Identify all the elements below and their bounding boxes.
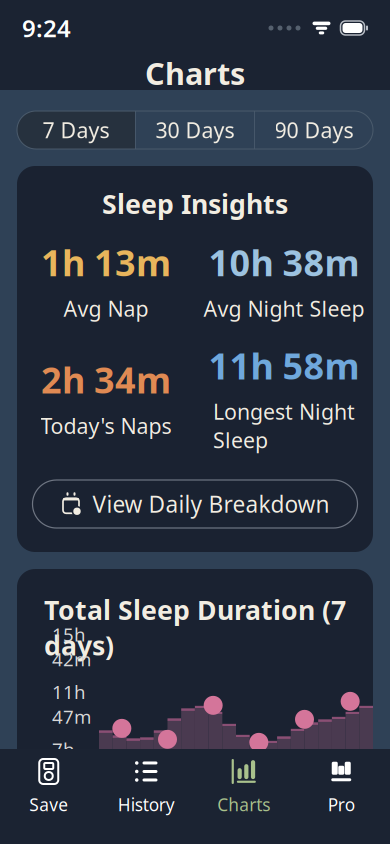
button[interactable]: Charts <box>195 762 292 812</box>
button[interactable]: Pro <box>292 762 390 812</box>
button[interactable]: View Daily Breakdown <box>32 480 357 528</box>
staticText: Total Sleep Duration (7 days) <box>44 592 346 663</box>
staticText: 30 Days <box>155 116 234 144</box>
staticText: 2h 34m <box>41 356 171 403</box>
staticText: Save <box>29 793 68 816</box>
button[interactable]: 30 Days <box>136 111 254 149</box>
staticText: Longest Night Sleep <box>213 397 355 454</box>
button[interactable]: 90 Days <box>255 111 373 149</box>
staticText: 7h 51m <box>52 737 91 786</box>
button[interactable]: 7 Days <box>17 111 135 149</box>
staticText: View Daily Breakdown <box>92 489 329 519</box>
staticText: 7 Days <box>42 116 109 144</box>
staticText: Charts <box>217 793 270 816</box>
staticText: 10h 38m <box>208 238 359 286</box>
staticText: History <box>118 793 175 816</box>
staticText: 11h 47m <box>52 679 91 729</box>
staticText: Charts <box>145 53 245 93</box>
staticText: 1h 13m <box>41 238 171 286</box>
staticText: 3h 56m <box>52 794 91 844</box>
staticText: Pro <box>328 793 355 816</box>
button[interactable]: Save <box>0 762 97 812</box>
staticText: 9:24 <box>22 12 71 44</box>
staticText: 15h 42m <box>52 622 91 671</box>
staticText: Today's Naps <box>40 411 171 440</box>
staticText: 90 Days <box>274 116 353 144</box>
button[interactable]: History <box>97 762 195 812</box>
staticText: Avg Nap <box>63 294 148 322</box>
staticText: 11h 58m <box>208 341 359 389</box>
staticText: Avg Night Sleep <box>203 294 364 322</box>
staticText: Sleep Insights <box>102 186 288 221</box>
